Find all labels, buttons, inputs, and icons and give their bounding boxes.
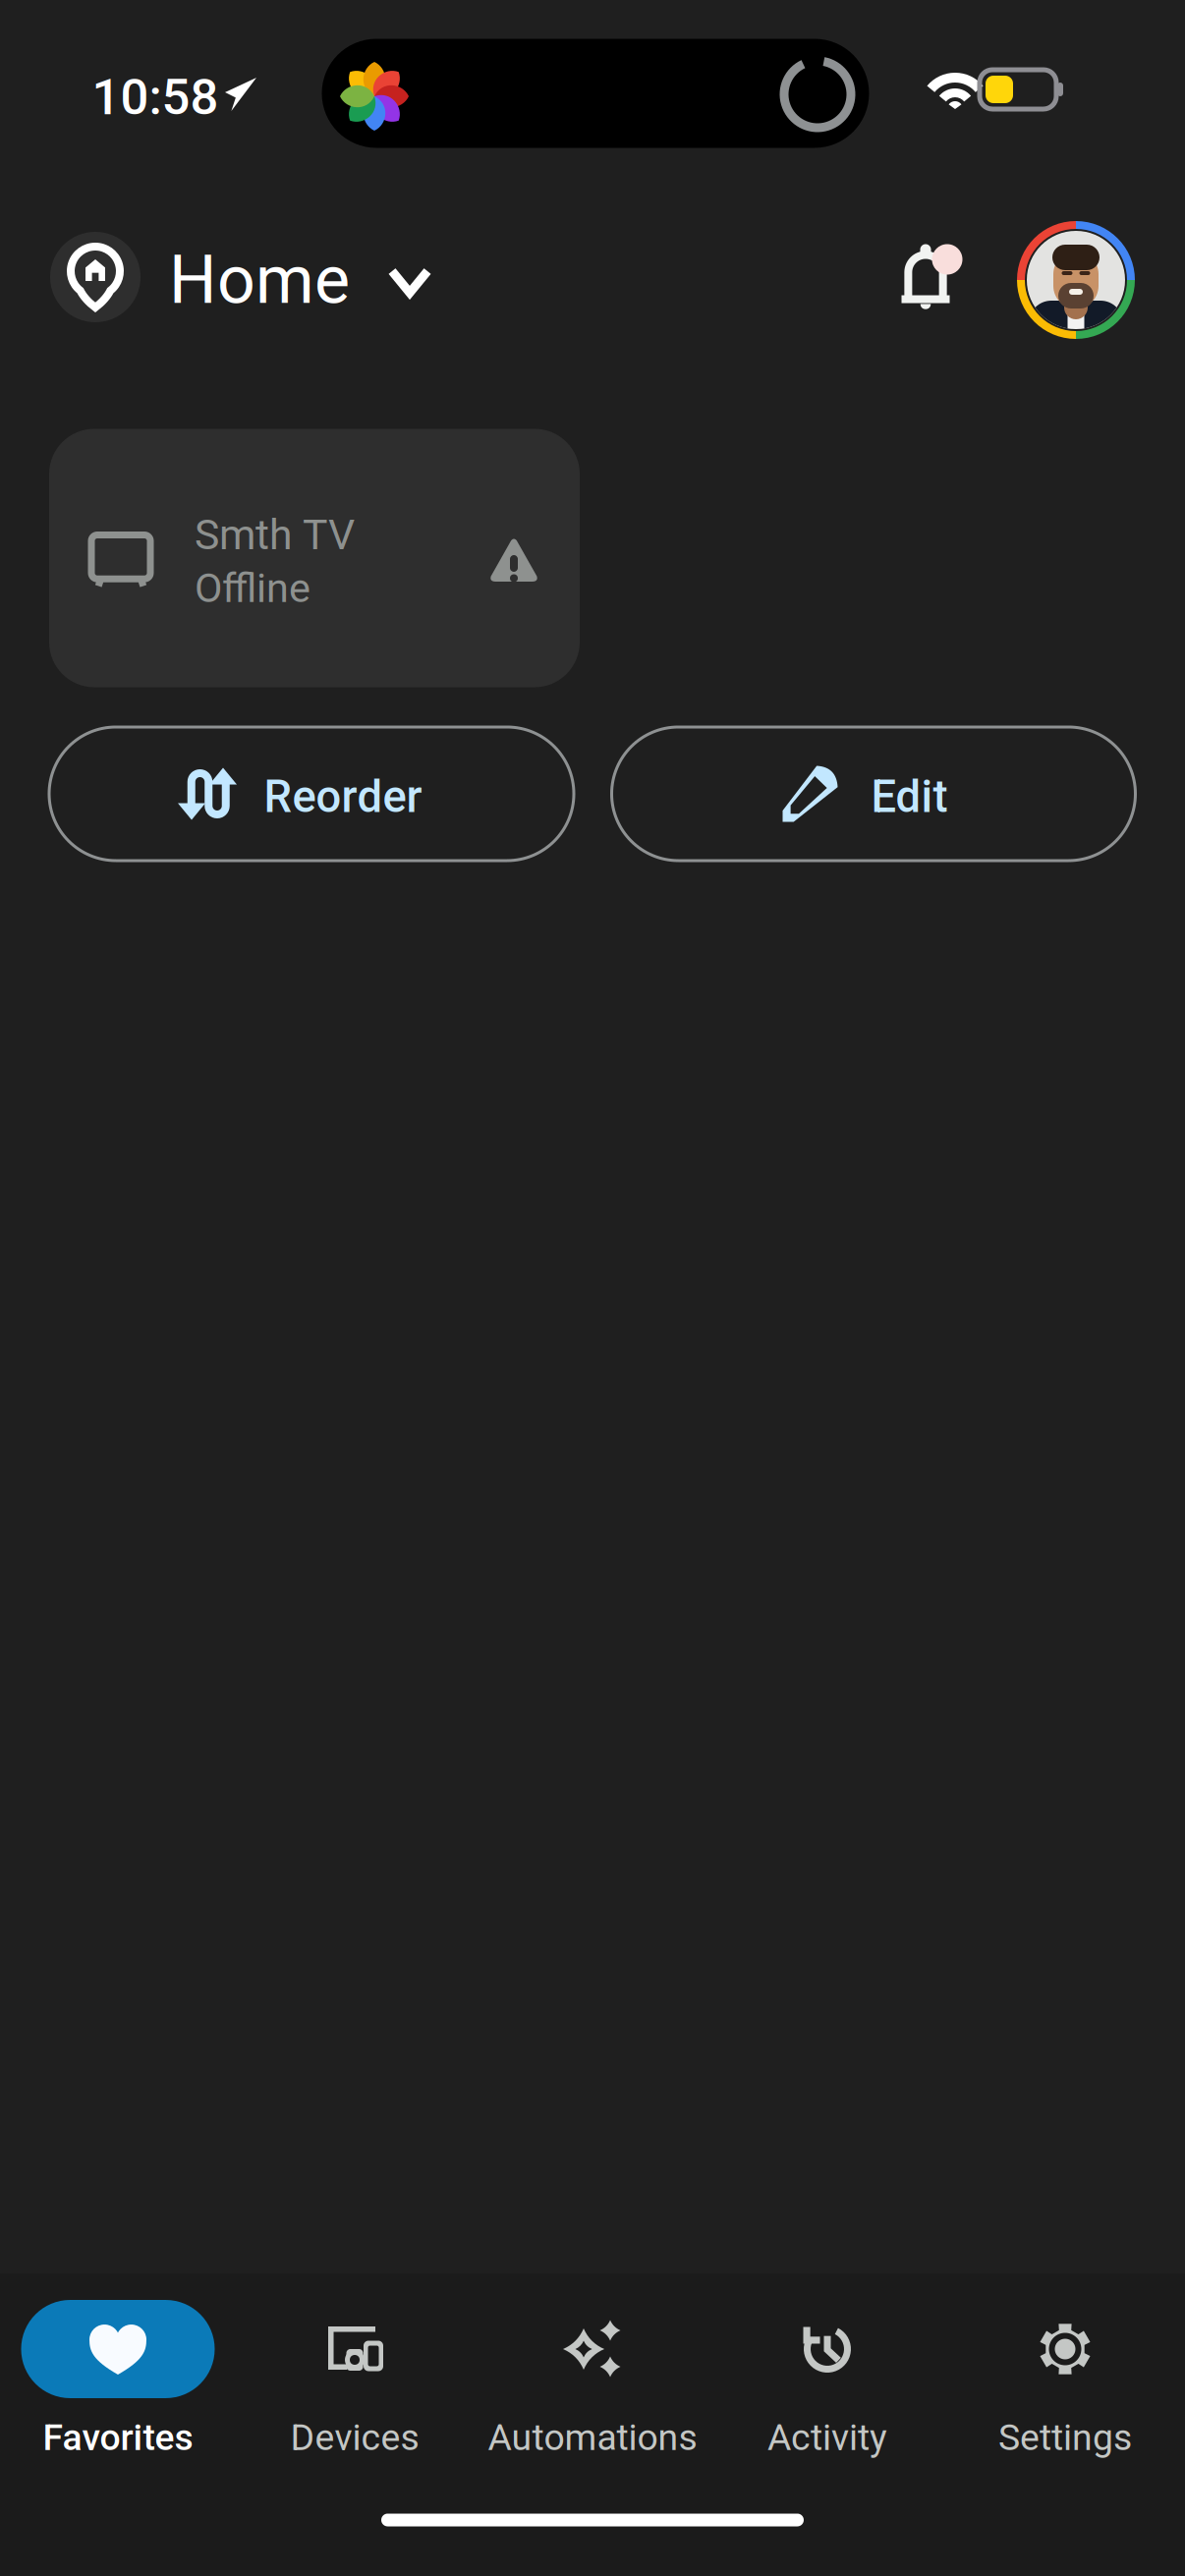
button[interactable]: Account — [1017, 221, 1135, 339]
button[interactable]: Home — [49, 226, 491, 328]
staticText: Home — [169, 241, 350, 319]
staticText: Edit — [871, 771, 948, 823]
button[interactable]: Activity — [709, 2289, 945, 2466]
staticText: Offline — [195, 564, 310, 612]
button[interactable]: Automations — [475, 2289, 710, 2466]
staticText: Reorder — [264, 771, 422, 823]
button[interactable]: Settings — [947, 2289, 1183, 2466]
button[interactable]: Notifications — [882, 239, 969, 325]
staticText: Activity — [767, 2416, 887, 2459]
button[interactable]: Reorder — [49, 727, 574, 861]
button[interactable]: Devices — [237, 2289, 473, 2466]
staticText: Favorites — [43, 2416, 193, 2459]
staticText: 10:58 — [92, 68, 219, 126]
button[interactable]: Edit — [612, 727, 1135, 861]
button[interactable]: Favorites — [0, 2289, 236, 2466]
staticText: Smth TV — [195, 510, 355, 560]
staticText: Settings — [998, 2416, 1132, 2459]
staticText: Devices — [290, 2416, 419, 2459]
button[interactable]: Smth TV — [49, 429, 580, 687]
staticText: Automations — [488, 2416, 697, 2459]
